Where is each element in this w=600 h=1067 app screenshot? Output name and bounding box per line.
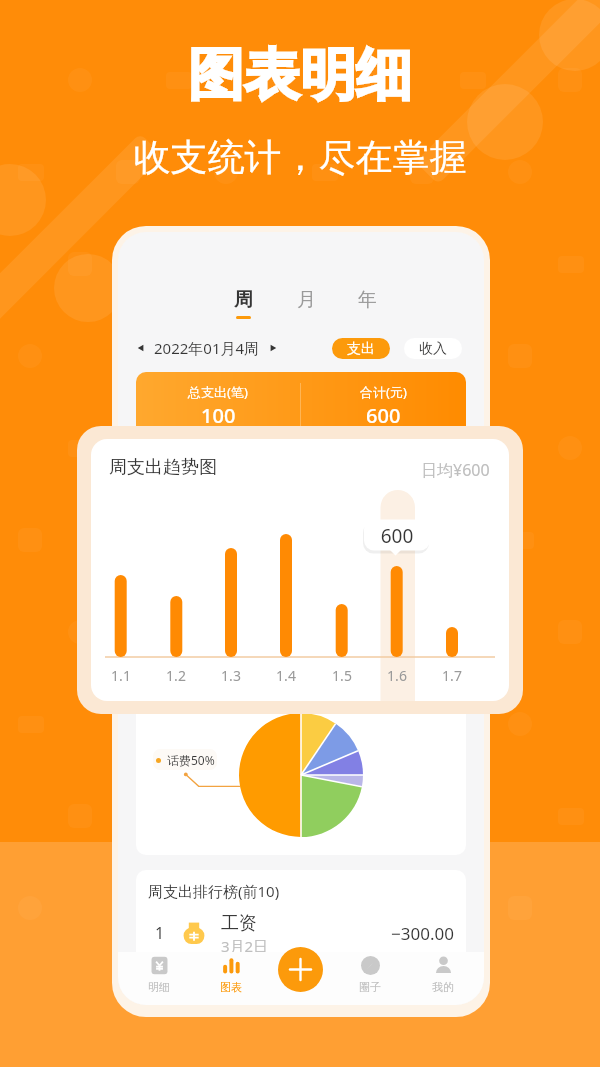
staticText: 周支出趋势图 xyxy=(109,456,217,479)
button[interactable]: 周 xyxy=(221,284,265,323)
staticText: 收入 xyxy=(419,340,447,358)
button[interactable]: 圈子 xyxy=(344,952,396,1005)
staticText: −300.00 xyxy=(391,922,454,945)
staticText: 1.5 xyxy=(326,666,358,685)
staticText: 1.2 xyxy=(160,666,192,685)
staticText: 1.4 xyxy=(270,666,302,685)
button[interactable]: 话费50% xyxy=(136,700,466,855)
staticText: 合计(元) xyxy=(360,383,407,401)
staticText: 周 xyxy=(234,288,253,312)
button[interactable]: 明细 xyxy=(133,952,185,1005)
staticText: 100 xyxy=(201,402,236,429)
staticText: 2022年01月4周 xyxy=(154,338,260,358)
button[interactable]: Next week xyxy=(269,344,277,352)
staticText: 收支统计，尽在掌握 xyxy=(0,134,600,181)
staticText: 圈子 xyxy=(359,980,381,994)
staticText: 1.3 xyxy=(215,666,247,685)
button[interactable]: 1 xyxy=(136,912,466,954)
staticText: 600 xyxy=(364,523,430,549)
staticText: 周支出排行榜(前10) xyxy=(148,881,280,901)
staticText: 1.1 xyxy=(105,666,137,685)
button[interactable]: 月 xyxy=(284,284,328,323)
staticText: 1.7 xyxy=(436,666,468,685)
staticText: 3月2日 xyxy=(221,936,269,954)
staticText: 支出 xyxy=(347,340,375,358)
button[interactable]: 支出 xyxy=(332,338,390,359)
staticText: 1.6 xyxy=(381,666,413,685)
button[interactable]: Previous week xyxy=(137,344,145,352)
staticText: 年 xyxy=(358,288,377,312)
button[interactable]: 收入 xyxy=(404,338,462,359)
staticText: 600 xyxy=(366,402,401,429)
staticText: 总支出(笔) xyxy=(188,383,248,401)
button[interactable]: 图表 xyxy=(205,952,257,1005)
staticText: 我的 xyxy=(432,980,454,994)
staticText: 明细 xyxy=(148,980,170,994)
button[interactable]: Add record xyxy=(278,947,323,992)
staticText: 1 xyxy=(155,922,165,944)
button[interactable]: 话费50% xyxy=(153,749,217,770)
staticText: 图表 xyxy=(220,980,242,994)
staticText: 话费50% xyxy=(167,752,215,768)
staticText: 月 xyxy=(297,288,316,312)
staticText: 日均¥600 xyxy=(421,459,490,481)
staticText: 工资 xyxy=(221,912,257,935)
button[interactable]: 总支出(笔) xyxy=(136,372,466,492)
button[interactable]: 年 xyxy=(345,284,389,323)
staticText: 图表明细 xyxy=(0,40,600,111)
button[interactable]: 我的 xyxy=(417,952,469,1005)
